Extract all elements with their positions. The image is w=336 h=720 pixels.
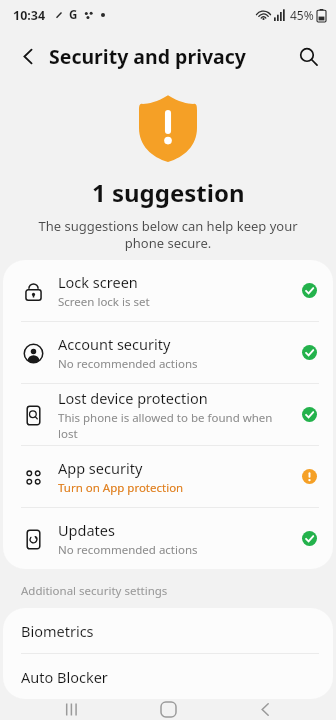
staticText: The suggestions below can help keep your…: [26, 217, 310, 252]
staticText: 1 suggestion: [92, 176, 245, 209]
staticText: Screen lock is set: [58, 294, 150, 310]
staticText: This phone is allowed to be found when l…: [58, 410, 294, 442]
staticText: Updates: [58, 520, 115, 540]
staticText: Biometrics: [21, 621, 94, 641]
button[interactable]: Updates: [3, 508, 333, 569]
staticText: App security: [58, 458, 143, 478]
button[interactable]: App security: [3, 446, 333, 507]
button[interactable]: Search: [288, 36, 328, 76]
button[interactable]: Account security: [3, 322, 333, 383]
staticText: No recommended actions: [58, 542, 198, 558]
staticText: No recommended actions: [58, 356, 198, 372]
button[interactable]: Lost device protection: [3, 384, 333, 445]
staticText: G: [69, 7, 78, 23]
staticText: Auto Blocker: [21, 667, 108, 687]
button[interactable]: Back: [239, 699, 291, 720]
staticText: Turn on App protection: [58, 480, 184, 496]
button[interactable]: Lock screen: [3, 260, 333, 321]
staticText: 10:34: [13, 7, 46, 24]
button[interactable]: Back: [8, 36, 48, 76]
button[interactable]: Home: [142, 699, 194, 720]
staticText: Account security: [58, 334, 171, 354]
button[interactable]: Biometrics: [3, 608, 333, 653]
button[interactable]: Auto Blocker: [3, 654, 333, 699]
staticText: 45%: [290, 7, 314, 23]
staticText: Lock screen: [58, 272, 138, 292]
staticText: Lost device protection: [58, 388, 208, 408]
staticText: Additional security settings: [21, 583, 168, 599]
button[interactable]: Recent apps: [45, 699, 97, 720]
staticText: Security and privacy: [49, 43, 246, 70]
